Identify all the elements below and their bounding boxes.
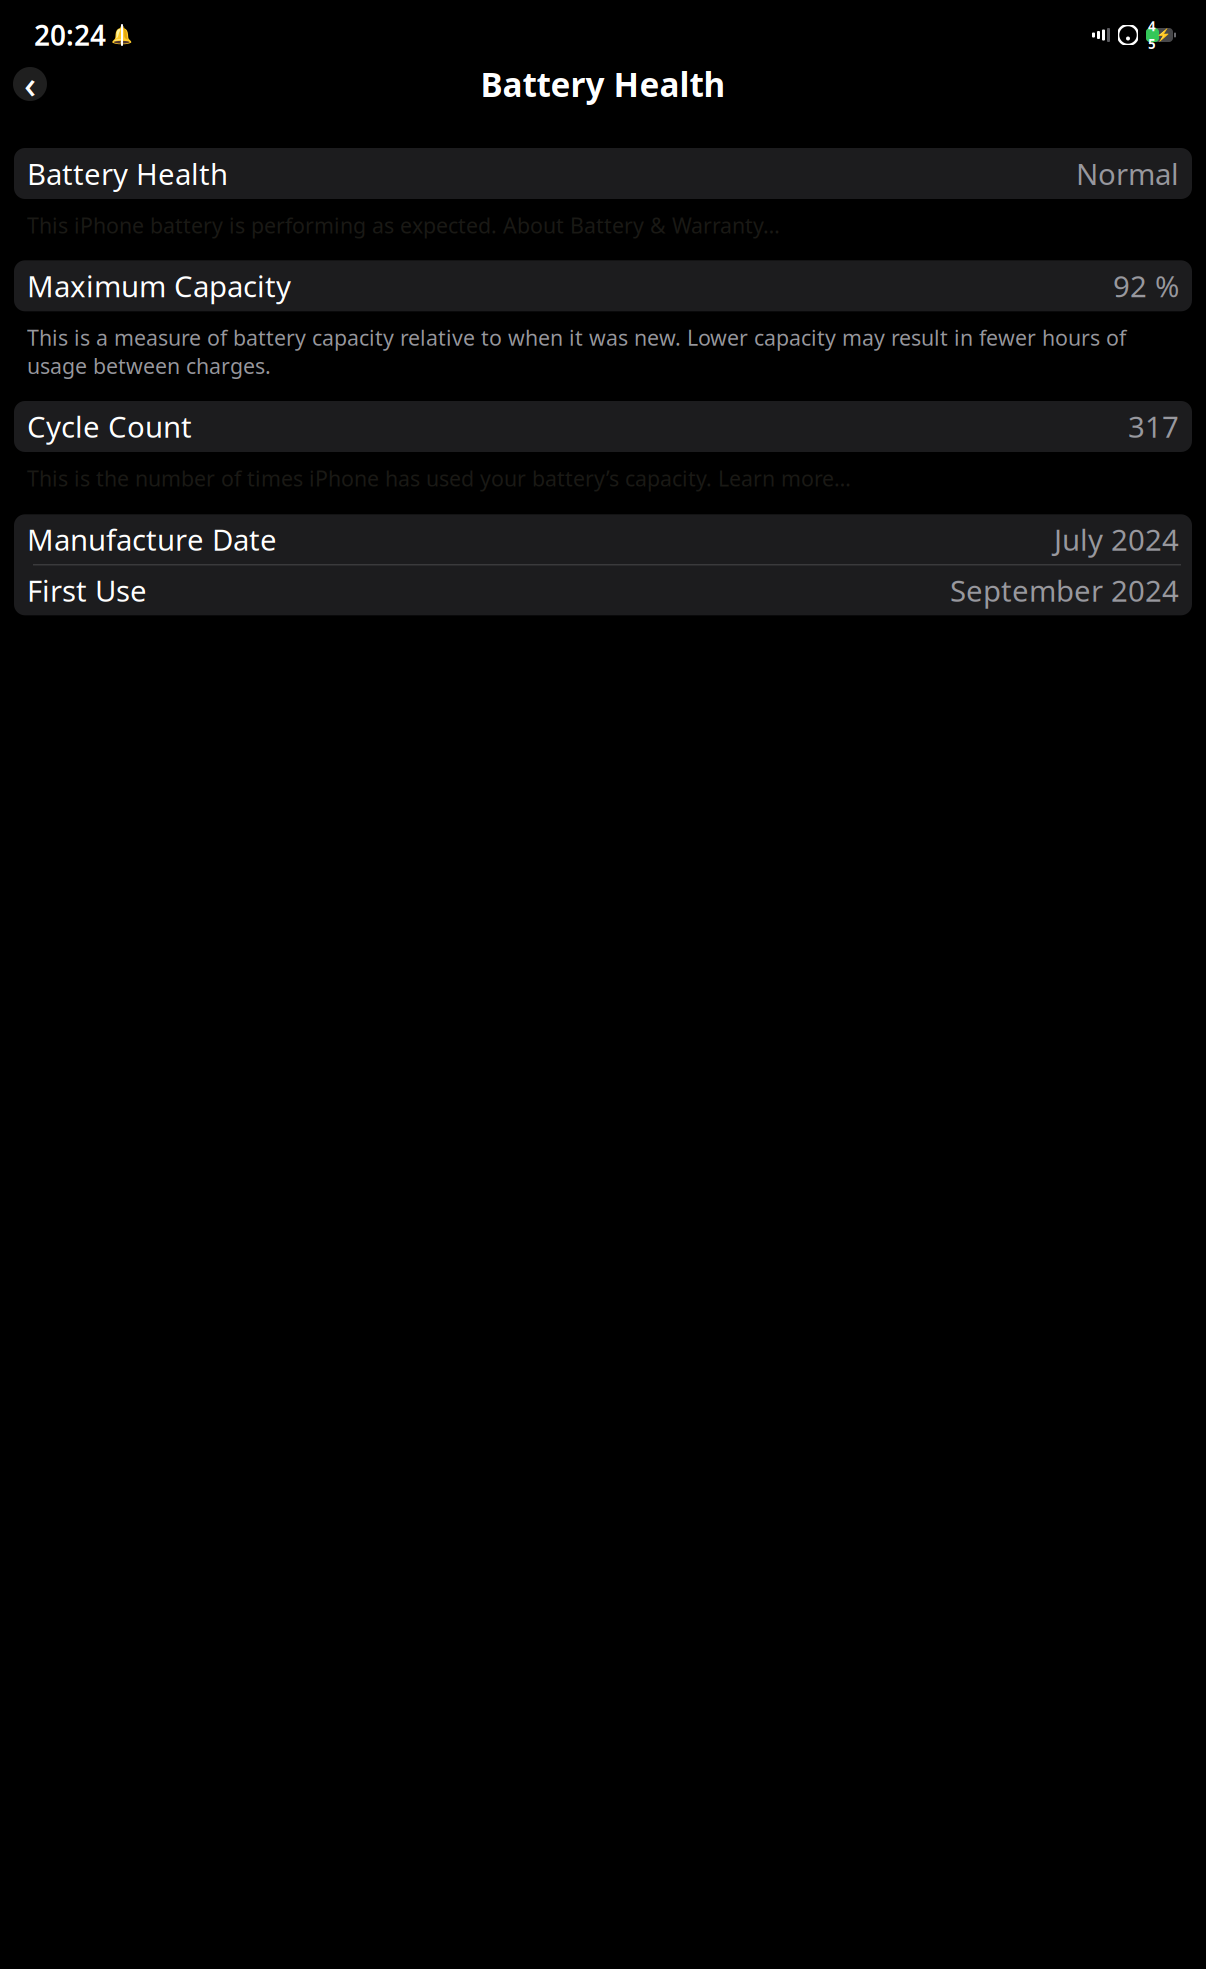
staticText: First Use (27, 571, 147, 610)
staticText: Manufacture Date (27, 520, 277, 559)
staticText: 🔔 (111, 25, 133, 45)
staticText: 92 % (1113, 266, 1179, 305)
staticText: This iPhone battery is performing as exp… (27, 211, 780, 239)
staticText: Cycle Count (27, 407, 192, 446)
staticText: Normal (1076, 154, 1179, 193)
button[interactable]: Cycle Count (14, 401, 1192, 452)
button[interactable]: Battery Health (14, 148, 1192, 199)
staticText: Maximum Capacity (27, 266, 291, 305)
staticText: Battery Health (27, 154, 228, 193)
button[interactable]: Maximum Capacity (14, 260, 1192, 311)
staticText: ‹ (24, 59, 36, 109)
staticText: 317 (1128, 407, 1179, 446)
staticText: 45 (1148, 17, 1156, 53)
button[interactable]: First Use (14, 565, 1192, 615)
staticText: This is the number of times iPhone has u… (27, 464, 851, 492)
staticText: Battery Health (480, 62, 725, 106)
button[interactable]: Back (13, 67, 47, 101)
staticText: 20:24 (34, 16, 106, 54)
button[interactable]: Manufacture Date (14, 514, 1192, 564)
staticText: This is a measure of battery capacity re… (27, 323, 1126, 380)
staticText: July 2024 (1054, 520, 1179, 559)
staticText: ⚡ (1156, 28, 1171, 42)
staticText: September 2024 (950, 571, 1179, 610)
